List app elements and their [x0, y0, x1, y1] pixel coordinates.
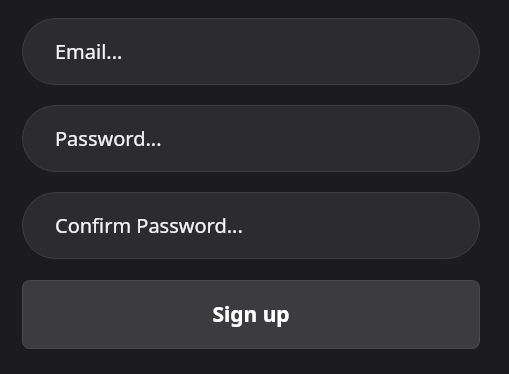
- staticText: Password...: [55, 125, 162, 152]
- button[interactable]: Confirm Password...: [22, 192, 480, 259]
- button[interactable]: Email...: [22, 18, 480, 85]
- staticText: Confirm Password...: [55, 212, 243, 239]
- button[interactable]: Password...: [22, 105, 480, 172]
- staticText: Email...: [55, 38, 123, 65]
- button[interactable]: Sign up: [22, 280, 480, 349]
- staticText: Sign up: [212, 300, 290, 329]
